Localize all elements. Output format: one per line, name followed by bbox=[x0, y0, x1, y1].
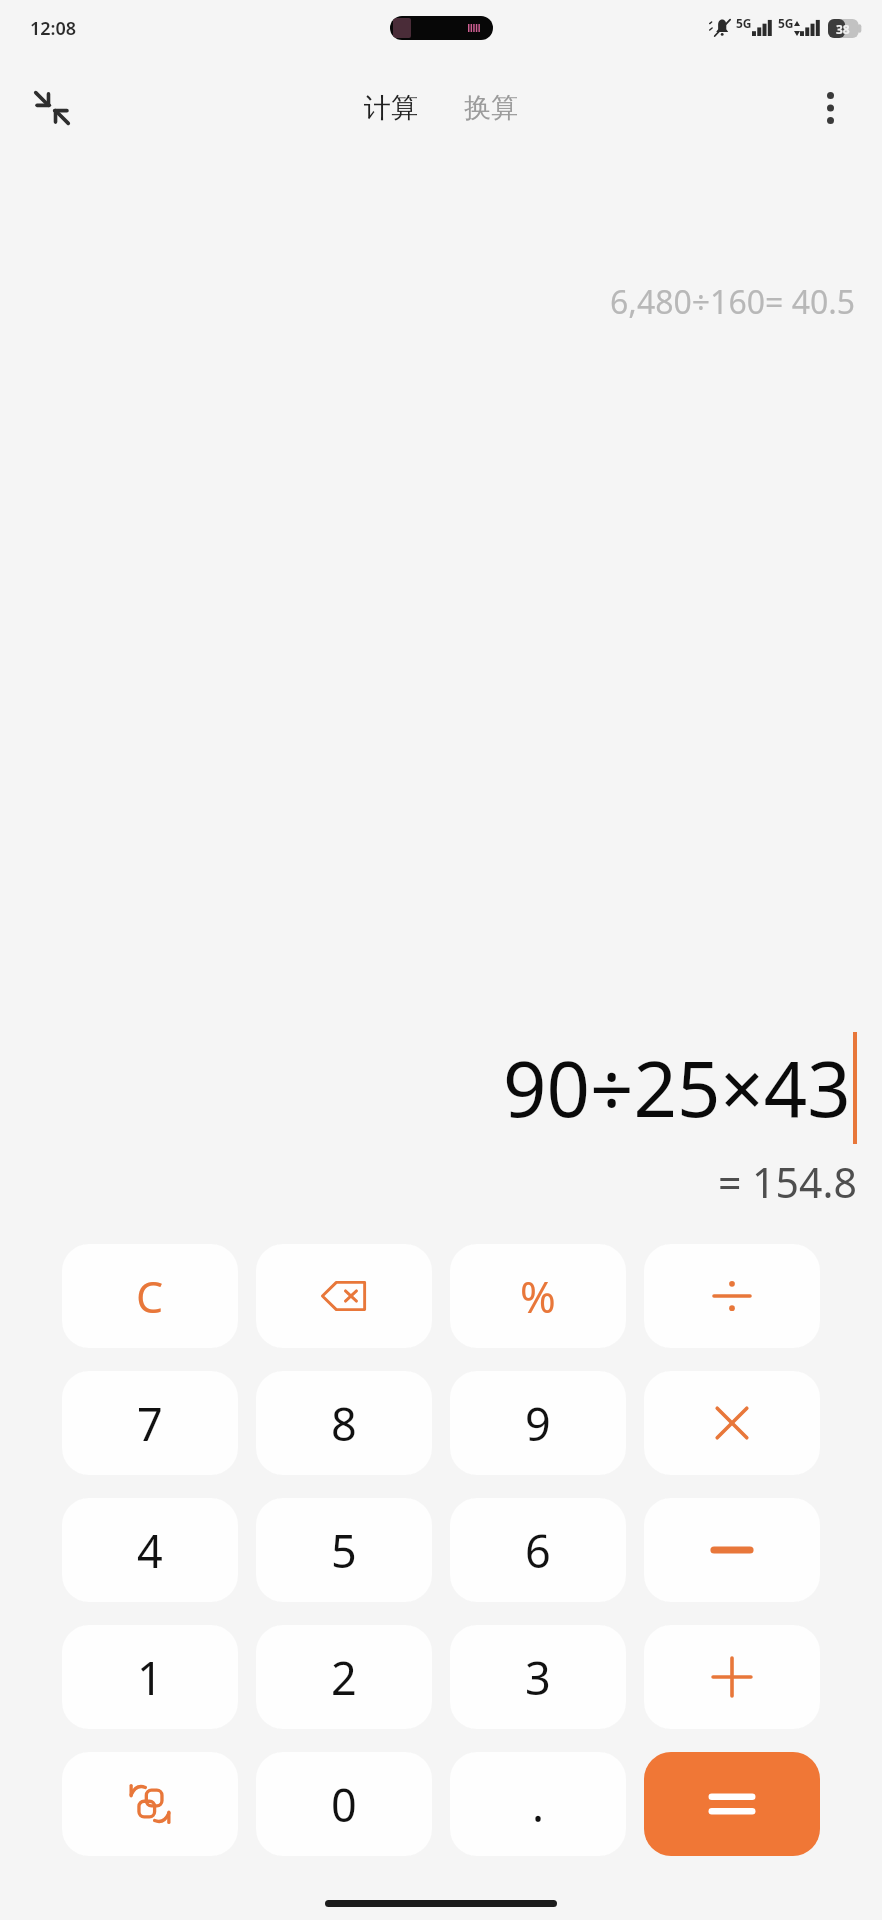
button[interactable]: More options bbox=[800, 78, 860, 138]
button[interactable]: 9 bbox=[450, 1371, 626, 1475]
button[interactable] bbox=[644, 1244, 820, 1348]
staticText: 1 bbox=[137, 1647, 163, 1708]
button[interactable]: Unit conversion bbox=[62, 1752, 238, 1856]
staticText: 4 bbox=[137, 1520, 163, 1581]
staticText: 6,480÷160= 40.5 bbox=[610, 280, 856, 324]
staticText: % bbox=[520, 1267, 556, 1326]
button[interactable]: 4 bbox=[62, 1498, 238, 1602]
button[interactable]: 0 bbox=[256, 1752, 432, 1856]
button[interactable]: 6 bbox=[450, 1498, 626, 1602]
staticText: C bbox=[136, 1267, 164, 1326]
staticText: 12:08 bbox=[30, 16, 77, 41]
button[interactable] bbox=[644, 1498, 820, 1602]
button[interactable]: . bbox=[450, 1752, 626, 1856]
staticText: 9 bbox=[525, 1393, 551, 1454]
button[interactable] bbox=[644, 1371, 820, 1475]
staticText: 38 bbox=[836, 21, 850, 37]
staticText: = 154.8 bbox=[718, 1154, 857, 1210]
staticText: 90÷25×43 bbox=[503, 1036, 851, 1140]
button[interactable]: C bbox=[62, 1244, 238, 1348]
button[interactable]: 换算 bbox=[452, 81, 530, 135]
staticText: 2 bbox=[331, 1647, 357, 1708]
staticText: 5 bbox=[331, 1520, 357, 1581]
staticText: 换算 bbox=[464, 91, 518, 125]
staticText: 3 bbox=[525, 1647, 551, 1708]
staticText: 5G bbox=[736, 15, 752, 31]
button[interactable]: Equals bbox=[644, 1752, 820, 1856]
staticText: 8 bbox=[331, 1393, 357, 1454]
button[interactable] bbox=[644, 1625, 820, 1729]
button[interactable]: Collapse bbox=[20, 76, 84, 140]
button[interactable] bbox=[256, 1244, 432, 1348]
button[interactable]: 8 bbox=[256, 1371, 432, 1475]
button[interactable]: % bbox=[450, 1244, 626, 1348]
button[interactable]: 计算 bbox=[352, 81, 430, 135]
button[interactable]: 3 bbox=[450, 1625, 626, 1729]
button[interactable]: 2 bbox=[256, 1625, 432, 1729]
staticText: 计算 bbox=[364, 91, 418, 125]
staticText: 5G bbox=[778, 15, 794, 31]
staticText: . bbox=[532, 1774, 545, 1835]
staticText: 6 bbox=[525, 1520, 551, 1581]
staticText: 0 bbox=[331, 1774, 357, 1835]
staticText: 7 bbox=[137, 1393, 163, 1454]
button[interactable]: 7 bbox=[62, 1371, 238, 1475]
button[interactable]: 5 bbox=[256, 1498, 432, 1602]
button[interactable]: 1 bbox=[62, 1625, 238, 1729]
